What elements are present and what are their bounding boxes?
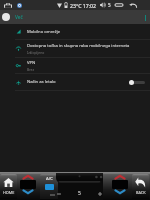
staticText: Brez [27,67,35,72]
button[interactable]: Temperature up [22,174,34,180]
staticText: 5 [108,2,111,8]
button[interactable]: Temperature down [22,189,34,195]
button[interactable]: Temperature up [114,174,126,180]
button[interactable]: Fan speed down [56,191,62,197]
button[interactable]: Back [129,3,137,8]
button[interactable]: HOME [0,174,17,199]
button[interactable]: Account [2,13,10,21]
button[interactable]: Airplane mode toggle [129,78,145,86]
button[interactable]: Način za letalo [0,74,150,91]
staticText: 23°C 17:02 [70,2,97,9]
staticText: Izklopljeno [27,50,45,55]
button[interactable]: A/C [40,174,58,199]
button[interactable]: Več [0,10,150,24]
staticText: Mobilno omrežje [27,29,61,35]
button[interactable]: VPN [0,58,150,74]
staticText: VPN [27,60,36,66]
staticText: Dostopna točka in skupna raba mobilnega … [27,43,130,49]
staticText: Način za letalo [27,79,56,85]
staticText: Več [15,14,23,21]
button[interactable]: Fan speed up [97,191,103,197]
staticText: HOME [3,190,15,195]
staticText: 5 [78,190,81,197]
button[interactable]: BACK [132,174,149,199]
button[interactable]: Mobilno omrežje [0,24,150,40]
button[interactable]: Recents [115,3,123,7]
button[interactable]: Temperature down [114,189,126,195]
staticText: BACK [136,190,146,195]
staticText: A/C [46,176,53,182]
button[interactable]: Dostopna točka in skupna raba mobilnega … [0,40,150,58]
